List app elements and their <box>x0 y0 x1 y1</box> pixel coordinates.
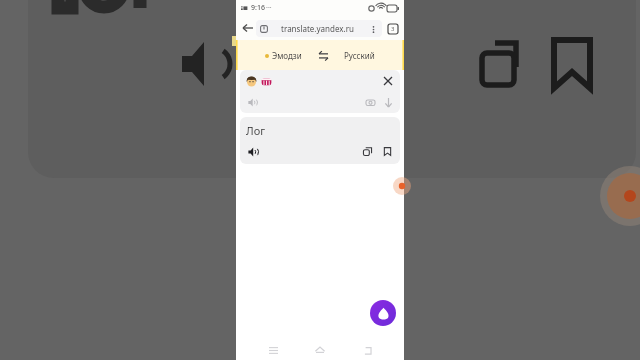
button[interactable]: Clear <box>382 75 394 87</box>
staticText: ··· <box>266 3 272 13</box>
button[interactable]: Русский <box>341 48 378 63</box>
button[interactable]: Swap languages <box>315 47 331 63</box>
button[interactable]: Back <box>357 340 379 360</box>
staticText: Эмодзи <box>272 50 302 61</box>
button[interactable]: Bookmark <box>381 145 394 158</box>
staticText: 3 <box>391 25 395 33</box>
button[interactable]: Listen <box>246 145 259 158</box>
button[interactable]: Tabs <box>385 21 400 36</box>
button[interactable]: Эмодзи <box>262 48 305 63</box>
button[interactable]: Camera <box>364 96 376 108</box>
button[interactable]: Clear <box>240 70 400 113</box>
button[interactable]: Лог <box>240 117 400 164</box>
button[interactable]: Back <box>240 20 256 36</box>
button[interactable]: Copy <box>361 145 374 158</box>
staticText: 9:16 <box>251 3 265 13</box>
staticText: translate.yandex.ru <box>281 23 354 34</box>
staticText: Русский <box>344 50 375 61</box>
other: More options <box>368 24 378 34</box>
button[interactable]: Home <box>309 340 331 360</box>
button[interactable]: Listen <box>246 96 258 108</box>
button[interactable]: Alice assistant <box>370 300 396 326</box>
button[interactable]: Recent apps <box>262 340 284 360</box>
button[interactable]: translate.yandex.ru <box>256 20 382 37</box>
staticText: Лог <box>246 123 266 138</box>
button[interactable]: Voice input <box>382 96 394 108</box>
